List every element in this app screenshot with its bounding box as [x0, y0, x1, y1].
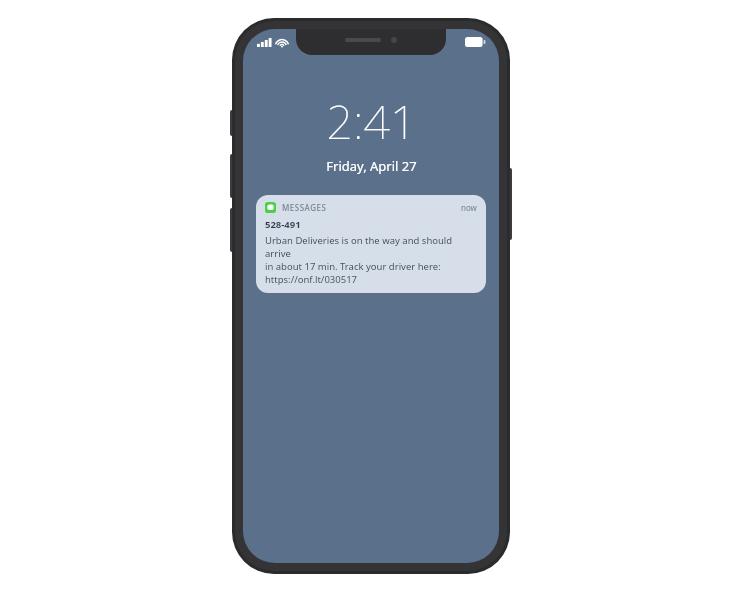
staticText: MESSAGES — [282, 202, 327, 213]
staticText: Friday, April 27 — [326, 157, 417, 175]
button[interactable]: MESSAGES — [256, 195, 486, 293]
staticText: 528-491 — [265, 218, 301, 231]
staticText: Urban Deliveries is on the way and shoul… — [265, 234, 477, 260]
staticText: now — [461, 202, 477, 213]
staticText: 2:41 — [326, 89, 417, 153]
staticText: in about 17 min. Track your driver here: — [265, 260, 441, 273]
staticText: https://onf.lt/030517 — [265, 273, 357, 286]
